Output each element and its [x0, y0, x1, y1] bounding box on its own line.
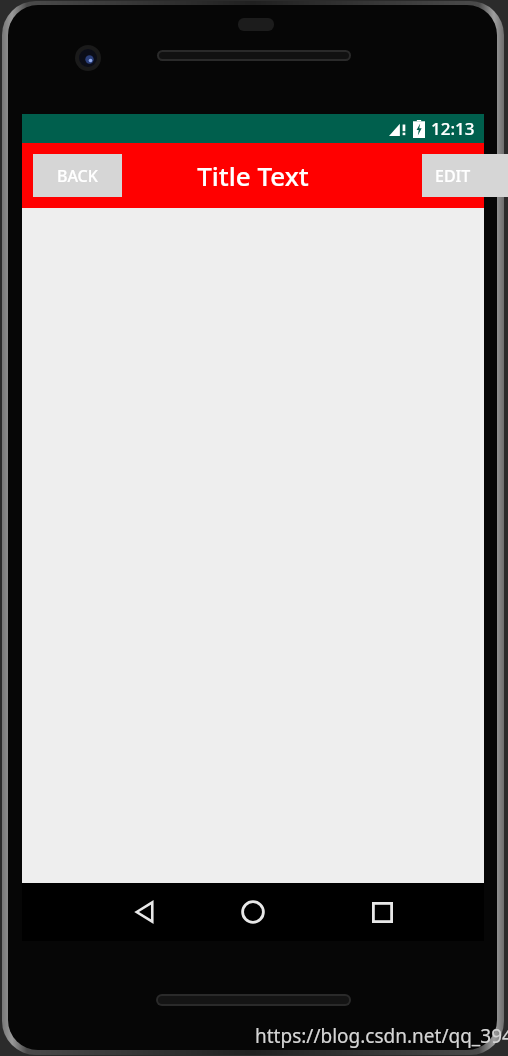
- button[interactable]: Back: [100, 883, 190, 941]
- staticText: BACK: [57, 165, 98, 187]
- staticText: 12:13: [431, 117, 475, 140]
- button[interactable]: Recent apps: [337, 883, 427, 941]
- staticText: Title Text: [197, 158, 309, 193]
- button[interactable]: BACK: [33, 154, 122, 197]
- button[interactable]: EDIT: [422, 154, 508, 197]
- staticText: EDIT: [435, 165, 471, 187]
- staticText: https://blog.csdn.net/qq_39438055: [255, 1023, 508, 1049]
- button[interactable]: Home: [208, 883, 298, 941]
